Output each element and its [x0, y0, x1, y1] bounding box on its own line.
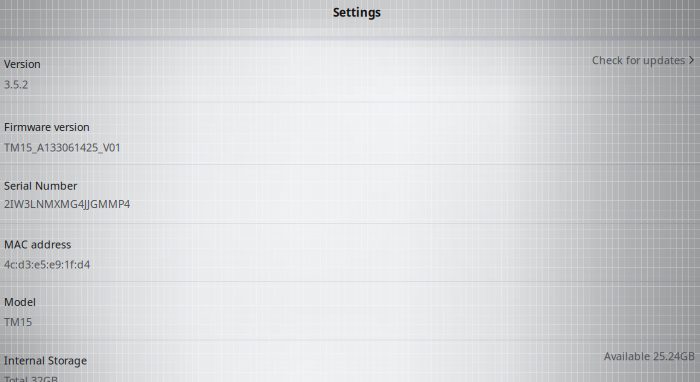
staticText: 4c:d3:e5:e9:1f:d4	[4, 257, 90, 272]
staticText: Check for updates	[592, 53, 685, 67]
button[interactable]: Version	[0, 38, 700, 103]
staticText: Available 25.24GB	[604, 349, 695, 363]
staticText: MAC address	[4, 237, 71, 252]
button[interactable]: Model	[0, 283, 700, 341]
staticText: 3.5.2	[4, 77, 28, 91]
staticText: TM15	[4, 315, 32, 329]
staticText: Model	[4, 295, 36, 309]
staticText: Firmware version	[4, 119, 90, 134]
staticText: Serial Number	[4, 178, 77, 193]
staticText: 2IW3LNMXMG4JJGMMP4	[4, 197, 130, 211]
staticText: TM15_A133061425_V01	[4, 140, 121, 155]
staticText: Settings	[333, 4, 381, 20]
staticText: Total 32GB	[4, 373, 58, 382]
button[interactable]: Serial Number	[0, 166, 700, 225]
staticText: Version	[4, 56, 41, 71]
button[interactable]: Settings	[333, 5, 393, 19]
staticText: Internal Storage	[4, 353, 87, 368]
button[interactable]: Firmware version	[0, 104, 700, 166]
button[interactable]: MAC address	[0, 225, 700, 283]
button[interactable]: Internal Storage	[0, 341, 700, 382]
